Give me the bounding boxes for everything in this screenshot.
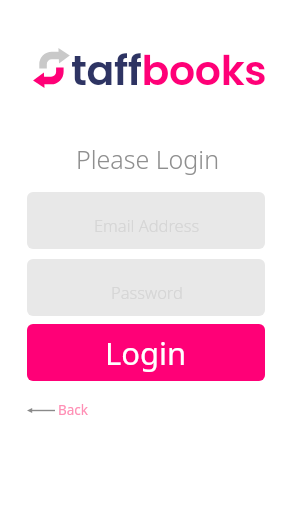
staticText: Password — [111, 281, 183, 303]
staticText: Back — [58, 401, 89, 419]
staticText: Please Login — [76, 142, 220, 176]
other: Back — [27, 403, 55, 417]
staticText: Email Address — [94, 214, 200, 236]
button[interactable]: Login — [27, 324, 265, 381]
button[interactable]: Back — [27, 400, 93, 420]
staticText: taffbooks — [71, 42, 267, 99]
staticText: Login — [105, 332, 187, 374]
